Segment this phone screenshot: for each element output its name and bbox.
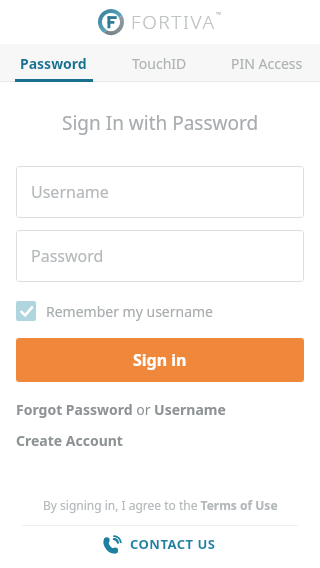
button[interactable]: Forgot Password or Username bbox=[16, 400, 226, 419]
button[interactable]: Password bbox=[16, 230, 304, 282]
button[interactable]: TouchID bbox=[106, 44, 213, 82]
staticText: Forgot Password or Username bbox=[16, 400, 226, 419]
staticText: TouchID bbox=[132, 54, 187, 73]
staticText: Sign in bbox=[133, 349, 187, 371]
staticText: FORTIVA bbox=[131, 9, 216, 35]
staticText: Password bbox=[20, 54, 87, 73]
button[interactable]: Username bbox=[16, 166, 304, 218]
button[interactable]: Sign in bbox=[16, 338, 304, 382]
staticText: PIN Access bbox=[231, 54, 303, 73]
staticText: CONTACT US bbox=[130, 535, 216, 553]
button[interactable]: PIN Access bbox=[213, 44, 320, 82]
button[interactable]: Create Account bbox=[16, 431, 123, 450]
button[interactable]: Remember my username bbox=[16, 301, 214, 321]
staticText: Password bbox=[31, 245, 104, 267]
button[interactable]: Password bbox=[0, 44, 106, 82]
staticText: Sign In with Password bbox=[62, 110, 259, 136]
button[interactable]: By signing in, I agree to the Terms of U… bbox=[31, 495, 290, 515]
button[interactable]: Contact us by phone bbox=[0, 526, 320, 562]
other: Contact us by phone bbox=[105, 536, 121, 552]
staticText: By signing in, I agree to the Terms of U… bbox=[43, 497, 278, 513]
staticText: ™ bbox=[216, 10, 222, 20]
staticText: Username bbox=[31, 181, 109, 203]
staticText: Remember my username bbox=[46, 302, 214, 321]
staticText: Create Account bbox=[16, 431, 123, 450]
